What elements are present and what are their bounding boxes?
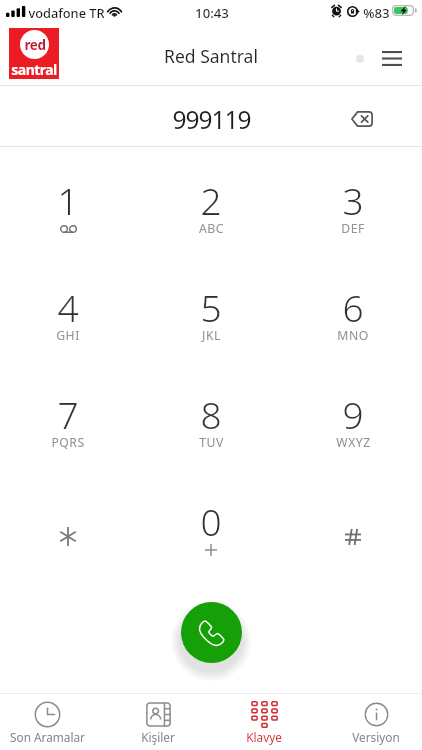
staticText: GHI — [56, 327, 80, 344]
staticText: PQRS — [51, 434, 85, 451]
staticText: TUV — [199, 434, 224, 451]
button[interactable]: 3 — [293, 175, 413, 275]
button[interactable]: 8 — [151, 389, 271, 489]
button[interactable]: 6 — [293, 282, 413, 382]
staticText: red — [24, 36, 46, 54]
button[interactable]: Red Santral logo — [9, 28, 59, 79]
button[interactable] — [293, 496, 413, 596]
staticText: JKL — [202, 327, 221, 344]
staticText: WXYZ — [336, 434, 371, 451]
staticText: 6 — [342, 282, 364, 332]
button[interactable]: Son Aramalar — [0, 701, 99, 745]
staticText: Son Aramalar — [10, 729, 85, 745]
staticText: 3 — [342, 175, 364, 225]
button[interactable]: 4 — [8, 282, 128, 382]
staticText: 7 — [57, 389, 79, 439]
staticText: DEF — [341, 220, 365, 237]
button[interactable]: Klavye — [212, 701, 316, 745]
staticText: 9 — [342, 389, 364, 439]
staticText: %83 — [363, 4, 390, 22]
button[interactable]: Versiyon — [324, 701, 422, 745]
staticText: 999119 — [172, 103, 251, 136]
staticText: 8 — [200, 389, 222, 439]
staticText: ABC — [199, 220, 224, 237]
button[interactable]: Call — [181, 602, 242, 663]
button[interactable]: 0 — [151, 496, 271, 596]
button[interactable]: 9 — [293, 389, 413, 489]
staticText: MNO — [337, 327, 369, 344]
staticText: 10:43 — [195, 4, 229, 22]
button[interactable]: 2 — [151, 175, 271, 275]
button[interactable]: 7 — [8, 389, 128, 489]
button[interactable]: Menu — [372, 38, 412, 78]
staticText: 5 — [200, 282, 222, 332]
staticText: santral — [9, 60, 59, 79]
button[interactable] — [8, 496, 128, 596]
button[interactable]: Backspace — [342, 99, 382, 139]
staticText: 1 — [57, 175, 79, 225]
staticText: Kişiler — [141, 729, 175, 745]
staticText: Red Santral — [164, 44, 258, 68]
staticText: 4 — [57, 282, 79, 332]
staticText: 2 — [200, 175, 222, 225]
button[interactable]: 5 — [151, 282, 271, 382]
staticText: 0 — [200, 496, 222, 546]
button[interactable]: 1 — [8, 175, 128, 275]
button[interactable]: Kişiler — [106, 701, 210, 745]
staticText: Versiyon — [352, 729, 400, 745]
staticText: vodafone TR — [28, 4, 105, 21]
staticText: Klavye — [246, 729, 282, 745]
